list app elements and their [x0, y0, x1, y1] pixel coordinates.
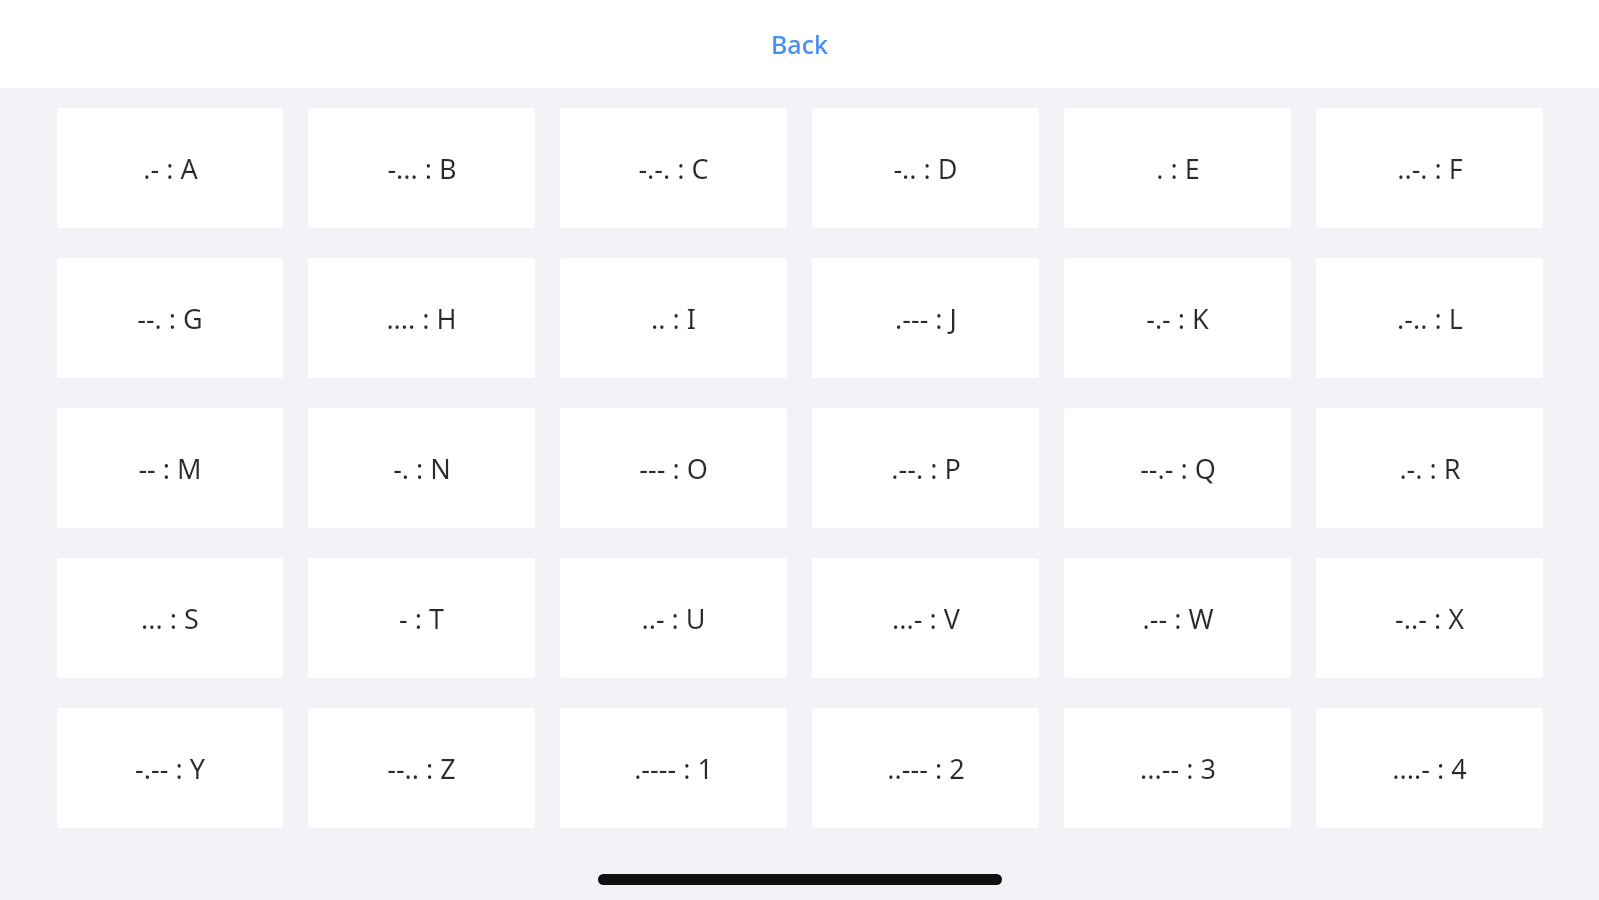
button[interactable]: -.. : D: [812, 108, 1039, 228]
button[interactable]: ...-- : 3: [1064, 708, 1291, 828]
staticText: .... : H: [386, 300, 457, 337]
button[interactable]: -.-. : C: [560, 108, 787, 228]
staticText: .-. : R: [1399, 450, 1461, 487]
button[interactable]: -. : N: [308, 408, 535, 528]
staticText: .--- : J: [895, 300, 957, 337]
button[interactable]: .- : A: [57, 108, 283, 228]
staticText: ..--- : 2: [887, 750, 965, 787]
staticText: .-.. : L: [1397, 300, 1463, 337]
staticText: --. : G: [137, 300, 203, 337]
staticText: - : T: [399, 600, 444, 637]
staticText: -- : M: [138, 450, 202, 487]
button[interactable]: .-. : R: [1316, 408, 1543, 528]
button[interactable]: ..-. : F: [1316, 108, 1543, 228]
button[interactable]: --.. : Z: [308, 708, 535, 828]
staticText: -..- : X: [1395, 600, 1464, 637]
button[interactable]: ..--- : 2: [812, 708, 1039, 828]
button[interactable]: .... : H: [308, 258, 535, 378]
staticText: ....- : 4: [1392, 750, 1467, 787]
staticText: .---- : 1: [634, 750, 713, 787]
button[interactable]: ....- : 4: [1316, 708, 1543, 828]
staticText: ...- : V: [892, 600, 960, 637]
staticText: -. : N: [393, 450, 451, 487]
staticText: -.- : K: [1146, 300, 1209, 337]
button[interactable]: Back: [755, 19, 844, 69]
button[interactable]: -.-- : Y: [57, 708, 283, 828]
staticText: .- : A: [143, 150, 198, 187]
staticText: ...-- : 3: [1140, 750, 1216, 787]
button[interactable]: -... : B: [308, 108, 535, 228]
staticText: --.. : Z: [387, 750, 456, 787]
button[interactable]: -- : M: [57, 408, 283, 528]
button[interactable]: . : E: [1064, 108, 1291, 228]
staticText: ..- : U: [641, 600, 706, 637]
staticText: ..-. : F: [1397, 150, 1463, 187]
staticText: . : E: [1156, 150, 1200, 187]
button[interactable]: --- : O: [560, 408, 787, 528]
staticText: --.- : Q: [1140, 450, 1216, 487]
button[interactable]: ... : S: [57, 558, 283, 678]
staticText: .-- : W: [1142, 600, 1214, 637]
staticText: -.-. : C: [638, 150, 709, 187]
staticText: .--. : P: [891, 450, 961, 487]
button[interactable]: .---- : 1: [560, 708, 787, 828]
button[interactable]: --. : G: [57, 258, 283, 378]
button[interactable]: - : T: [308, 558, 535, 678]
button[interactable]: .--. : P: [812, 408, 1039, 528]
button[interactable]: --.- : Q: [1064, 408, 1291, 528]
staticText: --- : O: [639, 450, 708, 487]
staticText: Back: [771, 27, 828, 61]
button[interactable]: .-- : W: [1064, 558, 1291, 678]
button[interactable]: ...- : V: [812, 558, 1039, 678]
staticText: -... : B: [387, 150, 457, 187]
other: Home indicator: [598, 874, 1002, 885]
staticText: -.. : D: [893, 150, 958, 187]
button[interactable]: ..- : U: [560, 558, 787, 678]
staticText: ... : S: [141, 600, 199, 637]
button[interactable]: .-.. : L: [1316, 258, 1543, 378]
staticText: .. : I: [651, 300, 696, 337]
button[interactable]: .--- : J: [812, 258, 1039, 378]
staticText: -.-- : Y: [135, 750, 205, 787]
button[interactable]: .. : I: [560, 258, 787, 378]
button[interactable]: -..- : X: [1316, 558, 1543, 678]
button[interactable]: -.- : K: [1064, 258, 1291, 378]
